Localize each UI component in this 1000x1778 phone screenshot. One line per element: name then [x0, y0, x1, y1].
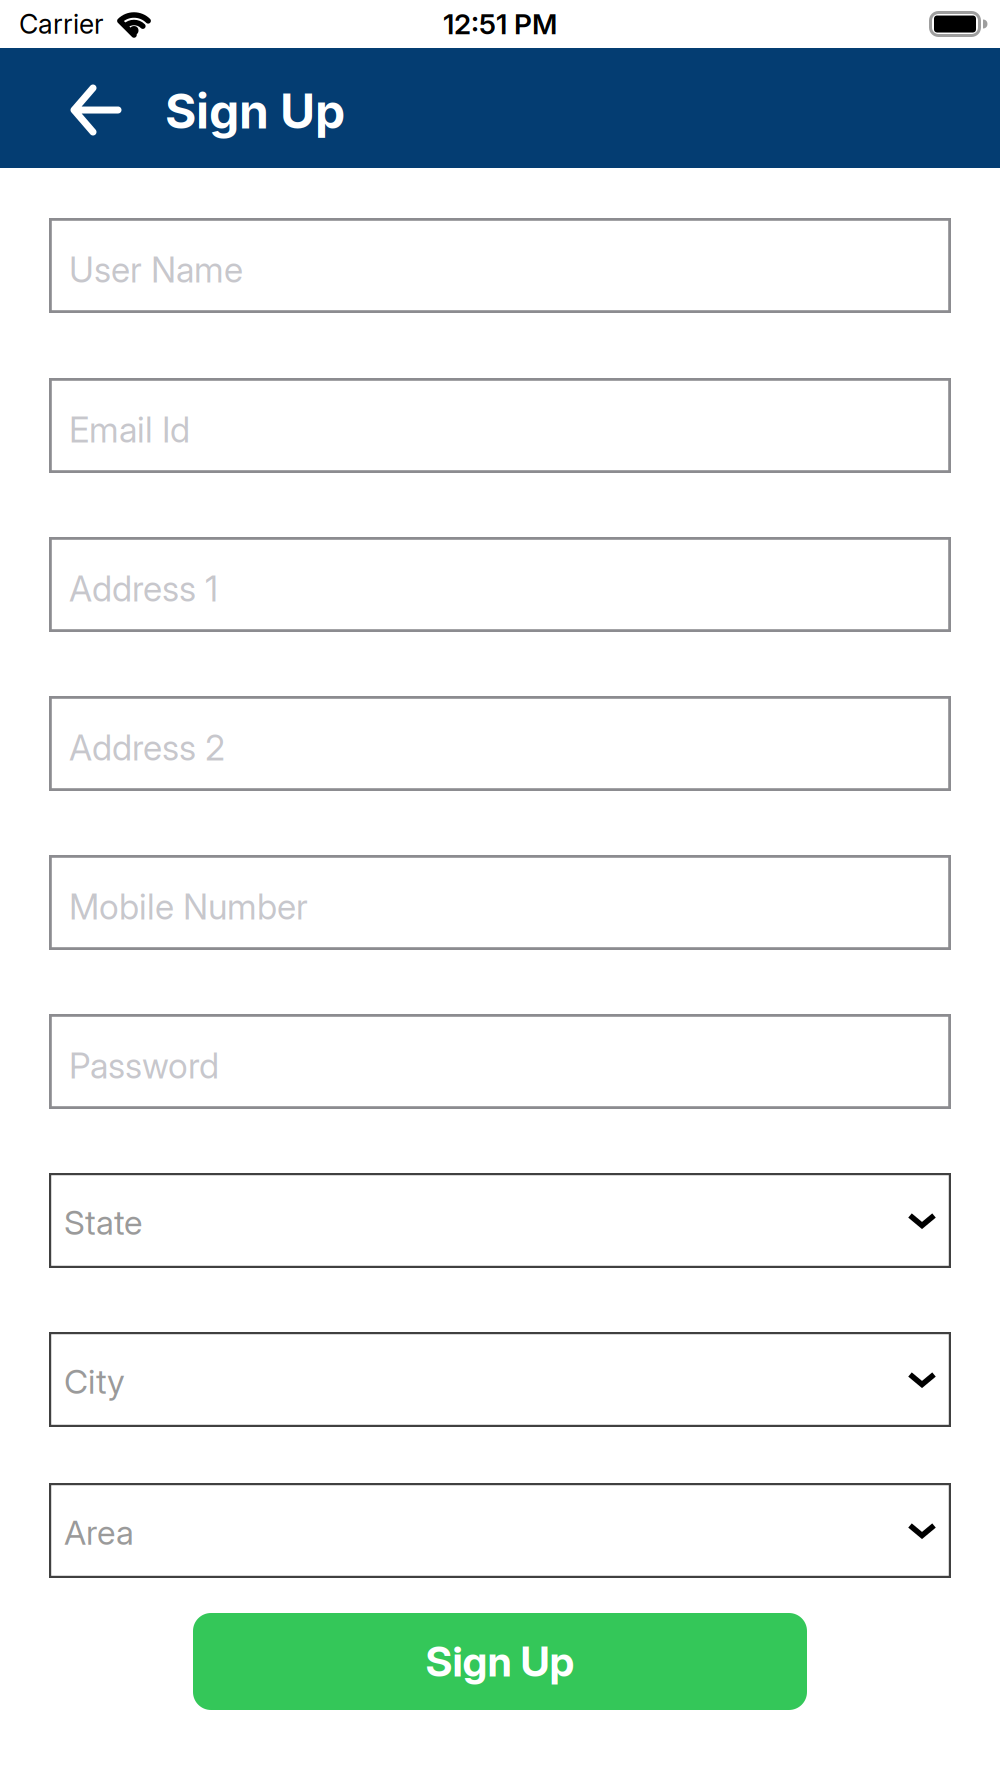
staticText: City [64, 1361, 125, 1402]
staticText: Sign Up [165, 82, 345, 140]
staticText: Mobile Number [69, 886, 308, 928]
button[interactable]: Mobile Number [49, 855, 951, 950]
button[interactable] [0, 82, 122, 134]
button[interactable]: Area [49, 1483, 951, 1578]
button[interactable]: Address 2 [49, 696, 951, 791]
button[interactable]: Email Id [49, 378, 951, 473]
staticText: Password [69, 1045, 219, 1087]
staticText: State [64, 1202, 142, 1243]
staticText: 12:51 PM [443, 7, 557, 41]
button[interactable]: Sign Up [193, 1613, 807, 1710]
staticText: Carrier [19, 8, 104, 40]
button[interactable]: State [49, 1173, 951, 1268]
button[interactable]: City [49, 1332, 951, 1427]
staticText: Email Id [69, 409, 190, 451]
button[interactable]: User Name [49, 218, 951, 313]
staticText: User Name [69, 249, 243, 291]
button[interactable]: Sign Up [122, 76, 345, 140]
button[interactable]: Password [49, 1014, 951, 1109]
staticText: Sign Up [425, 1636, 574, 1686]
staticText: Area [64, 1512, 134, 1553]
button[interactable]: Address 1 [49, 537, 951, 632]
staticText: Address 1 [69, 568, 218, 610]
staticText: Address 2 [69, 727, 225, 769]
